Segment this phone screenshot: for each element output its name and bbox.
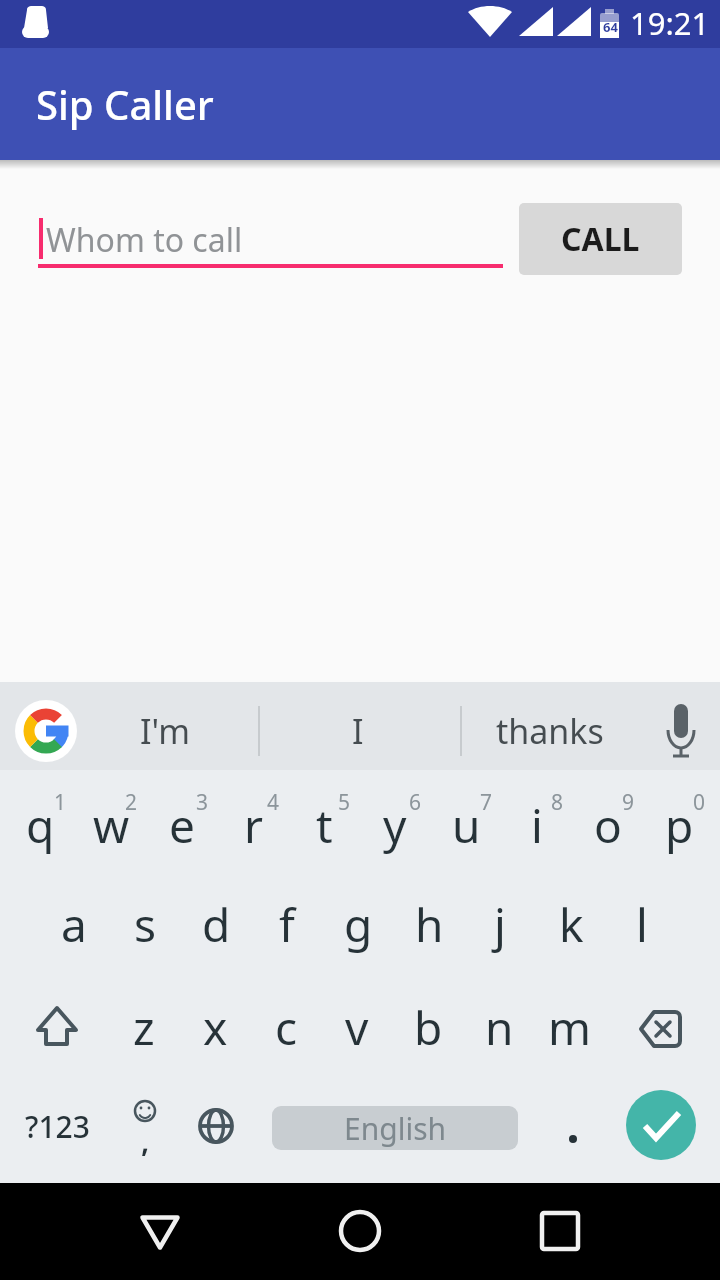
button[interactable]	[626, 1090, 696, 1160]
button[interactable]: thanks	[465, 701, 635, 761]
button[interactable]: English	[272, 1106, 518, 1150]
button[interactable]: b	[393, 979, 463, 1075]
staticText: 0	[693, 788, 706, 812]
button[interactable]: v	[322, 979, 392, 1075]
button[interactable]: l	[607, 876, 677, 972]
button[interactable]: u	[431, 780, 501, 870]
button[interactable]: o	[573, 780, 643, 870]
staticText: x	[203, 996, 228, 1059]
staticText: o	[594, 794, 622, 857]
staticText: ,	[140, 1112, 151, 1156]
button[interactable]: I	[278, 701, 438, 761]
staticText: 7	[480, 788, 493, 812]
button[interactable]: m	[535, 979, 605, 1075]
staticText: z	[133, 996, 155, 1059]
staticText: p	[665, 794, 694, 857]
staticText: j	[494, 893, 506, 956]
button[interactable]: i	[502, 780, 572, 870]
staticText: b	[414, 996, 443, 1059]
staticText: y	[383, 794, 407, 857]
staticText: 2	[125, 788, 138, 812]
staticText: u	[452, 794, 481, 857]
button[interactable]: c	[251, 979, 321, 1075]
button[interactable]	[15, 700, 77, 762]
staticText: CALL	[561, 217, 640, 261]
staticText: t	[316, 794, 333, 857]
button[interactable]: g	[323, 876, 393, 972]
button[interactable]: CALL	[519, 203, 682, 275]
button[interactable]: w	[76, 780, 146, 870]
staticText: k	[559, 893, 584, 956]
button[interactable]: ,	[125, 1112, 165, 1156]
button[interactable]: I'm	[85, 701, 245, 761]
button[interactable]: z	[109, 979, 179, 1075]
button[interactable]: f	[252, 876, 322, 972]
button[interactable]: Whom to call	[38, 200, 503, 270]
staticText: 19:21	[630, 2, 710, 44]
button[interactable]: h	[394, 876, 464, 972]
staticText: 6	[409, 788, 422, 812]
staticText: s	[134, 893, 157, 956]
button[interactable]: q	[5, 780, 75, 870]
staticText: v	[345, 996, 369, 1059]
staticText: I'm	[140, 708, 190, 754]
button[interactable]: a	[39, 876, 109, 972]
staticText: thanks	[496, 708, 604, 754]
staticText: i	[531, 794, 543, 857]
staticText: m	[548, 996, 592, 1059]
button[interactable]: r	[218, 780, 288, 870]
staticText: n	[485, 996, 514, 1059]
staticText: 9	[622, 788, 635, 812]
button[interactable]: k	[536, 876, 606, 972]
staticText: Whom to call	[46, 218, 243, 262]
button[interactable]: j	[465, 876, 535, 972]
button[interactable]: e	[147, 780, 217, 870]
staticText: w	[93, 794, 130, 857]
button[interactable]: ?123	[12, 1091, 102, 1161]
button[interactable]	[660, 704, 704, 760]
staticText: 1	[54, 788, 67, 812]
staticText: 3	[196, 788, 209, 812]
staticText: f	[279, 893, 295, 956]
button[interactable]	[190, 1095, 242, 1157]
staticText: e	[169, 794, 195, 857]
button[interactable]: t	[289, 780, 359, 870]
staticText: I	[352, 708, 364, 754]
button[interactable]	[330, 1203, 390, 1261]
staticText: Sip Caller	[36, 77, 214, 131]
button[interactable]: p	[644, 780, 714, 870]
staticText: a	[61, 893, 87, 956]
button[interactable]: y	[360, 780, 430, 870]
staticText: 8	[551, 788, 564, 812]
staticText: h	[415, 893, 444, 956]
staticText: c	[275, 996, 298, 1059]
staticText: g	[344, 893, 373, 956]
button[interactable]	[530, 1203, 590, 1261]
button[interactable]	[26, 990, 86, 1064]
button[interactable]	[553, 1106, 593, 1150]
staticText: 4	[267, 788, 280, 812]
button[interactable]	[130, 1203, 190, 1261]
button[interactable]: n	[464, 979, 534, 1075]
staticText: d	[202, 893, 231, 956]
staticText: r	[244, 794, 263, 857]
staticText: 5	[338, 788, 351, 812]
staticText: l	[636, 893, 648, 956]
staticText: q	[26, 794, 55, 857]
button[interactable]	[630, 990, 692, 1064]
button[interactable]: s	[110, 876, 180, 972]
staticText: English	[344, 1108, 447, 1149]
staticText: ?123	[25, 1106, 90, 1147]
button[interactable]: x	[180, 979, 250, 1075]
button[interactable]: d	[181, 876, 251, 972]
staticText: 64	[603, 18, 618, 36]
